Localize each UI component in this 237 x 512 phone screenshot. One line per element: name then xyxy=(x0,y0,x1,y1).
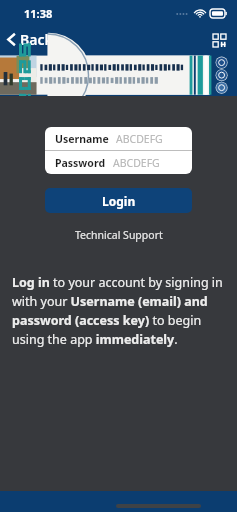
button[interactable]: Username xyxy=(45,127,192,150)
staticText: 11:38 xyxy=(24,6,53,21)
button[interactable] xyxy=(0,53,237,96)
staticText: ABCDEFG xyxy=(116,132,163,146)
staticText: Back xyxy=(20,30,53,49)
button[interactable]: Login xyxy=(45,188,192,213)
staticText: Log in to your account by signing in wit… xyxy=(12,274,227,348)
staticText: Password xyxy=(55,156,106,170)
staticText: ABCDEFG xyxy=(113,156,160,170)
button[interactable]: Password xyxy=(45,151,192,174)
button[interactable]: Scan QR code xyxy=(209,30,229,50)
button[interactable]: Technical Support xyxy=(67,225,171,245)
staticText: Login xyxy=(102,193,136,209)
button[interactable]: Back xyxy=(0,27,63,52)
staticText: Username xyxy=(55,132,109,146)
